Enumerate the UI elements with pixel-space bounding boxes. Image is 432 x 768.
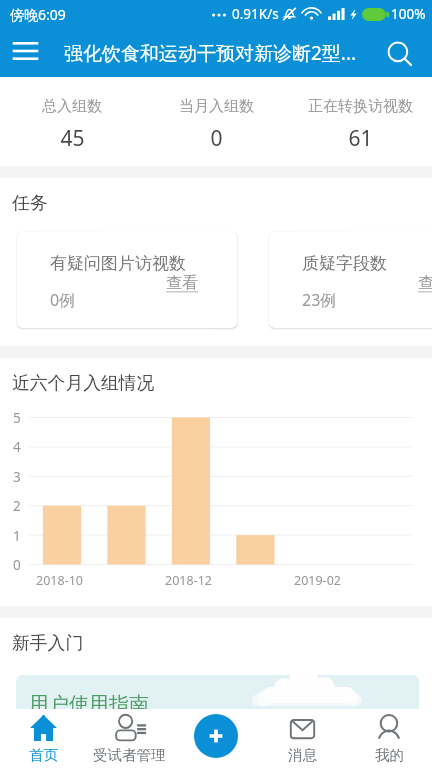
button[interactable]: 当月入组数 xyxy=(144,77,288,166)
staticText: 0.91K/s xyxy=(232,5,279,23)
button[interactable]: Add xyxy=(194,714,238,758)
button[interactable]: 有疑问图片访视数 xyxy=(17,232,237,328)
staticText: 正在转换访视数 xyxy=(308,97,413,116)
staticText: 2018-10 xyxy=(36,572,83,589)
staticText: 0例 xyxy=(50,289,76,311)
staticText: 61 xyxy=(348,124,373,153)
staticText: 2019-02 xyxy=(294,572,341,589)
staticText: 当月入组数 xyxy=(179,97,254,116)
staticText: 首页 xyxy=(29,746,58,764)
button[interactable]: 我的 xyxy=(346,709,432,768)
button[interactable]: 用户使用指南 xyxy=(16,675,419,763)
staticText: 受试者管理 xyxy=(93,746,166,764)
staticText: 1 xyxy=(13,527,21,545)
staticText: 有疑问图片访视数 xyxy=(50,253,186,274)
staticText: 4 xyxy=(13,438,21,456)
staticText: 2 xyxy=(13,497,21,515)
staticText: 100% xyxy=(391,5,426,23)
staticText: 傍晚6:09 xyxy=(10,5,66,24)
button[interactable]: 受试者管理 xyxy=(86,709,172,768)
button[interactable]: 总入组数 xyxy=(0,77,144,166)
staticText: 新手入门 xyxy=(12,632,84,654)
button[interactable]: Menu xyxy=(2,28,48,74)
staticText: 用户使用指南 xyxy=(29,692,149,717)
staticText: 0 xyxy=(210,124,223,153)
staticText: 0 xyxy=(13,556,21,574)
staticText: 我的 xyxy=(375,746,404,764)
staticText: 3 xyxy=(13,468,21,486)
staticText: 总入组数 xyxy=(42,97,102,116)
staticText: 查看 xyxy=(418,273,432,293)
staticText: 23例 xyxy=(302,289,337,311)
button[interactable]: 消息 xyxy=(259,709,345,768)
staticText: 5 xyxy=(13,409,21,427)
staticText: 消息 xyxy=(288,746,317,764)
staticText: 查看 xyxy=(166,273,198,293)
button[interactable]: 正在转换访视数 xyxy=(288,77,432,166)
staticText: 45 xyxy=(60,124,85,153)
staticText: 强化饮食和运动干预对新诊断2型... xyxy=(64,40,357,66)
staticText: 近六个月入组情况 xyxy=(12,372,155,394)
staticText: 2018-12 xyxy=(165,572,212,589)
button[interactable]: 质疑字段数 xyxy=(269,232,432,328)
staticText: 任务 xyxy=(12,192,48,214)
button[interactable]: Search xyxy=(378,31,422,75)
button[interactable]: 首页 xyxy=(0,709,86,768)
staticText: 质疑字段数 xyxy=(302,253,387,274)
